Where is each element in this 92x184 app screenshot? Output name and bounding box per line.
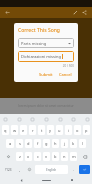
staticText: w: [13, 128, 17, 133]
staticText: m: [72, 154, 76, 159]
button[interactable]: d: [25, 139, 32, 148]
button[interactable]: Submit: [37, 71, 55, 78]
button[interactable]: Translate: [57, 116, 63, 122]
staticText: j: [64, 141, 66, 146]
staticText: l: [82, 141, 84, 146]
button[interactable]: Voice input: [2, 116, 8, 122]
button[interactable]: Sticker: [29, 116, 35, 122]
button[interactable]: r: [29, 125, 36, 135]
button[interactable]: k: [70, 139, 77, 148]
staticText: lorem ipsum dolor sit amet consectetur: [18, 104, 74, 108]
staticText: e: [22, 128, 25, 133]
staticText: g: [45, 141, 48, 146]
button[interactable]: Recents: [70, 178, 74, 182]
button[interactable]: b: [52, 152, 59, 161]
button[interactable]: Dichiarazioni missing: [18, 51, 74, 62]
button[interactable]: More: [70, 116, 76, 122]
staticText: i: [68, 128, 70, 133]
staticText: q: [4, 128, 7, 133]
staticText: ?123: [5, 168, 12, 172]
button[interactable]: i: [65, 125, 72, 135]
button[interactable]: Shift: [2, 152, 14, 161]
button[interactable]: Comma: [16, 165, 24, 174]
staticText: o: [76, 128, 79, 133]
button[interactable]: Parts missing: [18, 38, 74, 48]
staticText: x: [27, 154, 30, 159]
button[interactable]: Backspace: [79, 152, 90, 161]
button[interactable]: o: [74, 125, 81, 135]
staticText: y: [49, 128, 52, 133]
staticText: z: [19, 154, 21, 159]
staticText: d: [27, 141, 30, 146]
staticText: k: [72, 141, 75, 146]
button[interactable]: Symbols: [2, 165, 14, 174]
button[interactable]: c: [34, 152, 41, 161]
button[interactable]: Cancel: [57, 71, 74, 78]
staticText: Correct This Song: [18, 27, 60, 34]
button[interactable]: Period: [70, 165, 77, 174]
staticText: ,: [19, 167, 21, 172]
button[interactable]: Home: [41, 178, 51, 182]
button[interactable]: h: [52, 139, 59, 148]
button[interactable]: x: [25, 152, 32, 161]
staticText: r: [32, 128, 34, 133]
staticText: c: [37, 154, 39, 159]
staticText: t: [41, 128, 43, 133]
staticText: p: [85, 128, 88, 133]
staticText: .: [73, 167, 75, 172]
button[interactable]: p: [83, 125, 90, 135]
button[interactable]: Share: [80, 8, 89, 17]
button[interactable]: v: [43, 152, 50, 161]
button[interactable]: Back: [19, 178, 23, 182]
staticText: b: [54, 154, 57, 159]
button[interactable]: y: [47, 125, 54, 135]
button[interactable]: m: [70, 152, 77, 161]
staticText: h: [54, 141, 57, 146]
button[interactable]: Enter: [79, 165, 90, 174]
button[interactable]: j: [61, 139, 68, 148]
button[interactable]: Settings: [84, 116, 90, 122]
staticText: f: [37, 141, 39, 146]
button[interactable]: Space: [35, 165, 68, 174]
staticText: v: [45, 154, 48, 159]
button[interactable]: f: [34, 139, 41, 148]
staticText: English: [46, 168, 57, 172]
button[interactable]: Edit: [71, 8, 80, 17]
button[interactable]: e: [20, 125, 27, 135]
button[interactable]: Back: [3, 8, 12, 17]
staticText: Cancel: [59, 72, 72, 77]
staticText: n: [63, 154, 66, 159]
staticText: 20 / 500: [18, 64, 74, 68]
button[interactable]: s: [16, 139, 23, 148]
staticText: u: [58, 128, 61, 133]
button[interactable]: a: [6, 139, 14, 148]
button[interactable]: Clipboard: [43, 116, 49, 122]
staticText: s: [19, 141, 21, 146]
staticText: A Mano A Mano • Raga: [4, 32, 88, 39]
staticText: Submit: [39, 72, 53, 77]
staticText: Parts missing: [21, 41, 68, 46]
staticText: CORRECTIONS: [4, 49, 88, 54]
button[interactable]: l: [79, 139, 86, 148]
button[interactable]: n: [61, 152, 68, 161]
button[interactable]: t: [38, 125, 45, 135]
button[interactable]: q: [2, 125, 9, 135]
staticText: Dichiarazioni missing: [21, 54, 61, 59]
button[interactable]: z: [16, 152, 23, 161]
button[interactable]: Emoji: [26, 165, 33, 174]
button[interactable]: u: [56, 125, 63, 135]
button[interactable]: g: [43, 139, 50, 148]
button[interactable]: GIF: [16, 116, 22, 122]
staticText: a: [9, 141, 12, 146]
button[interactable]: w: [11, 125, 18, 135]
